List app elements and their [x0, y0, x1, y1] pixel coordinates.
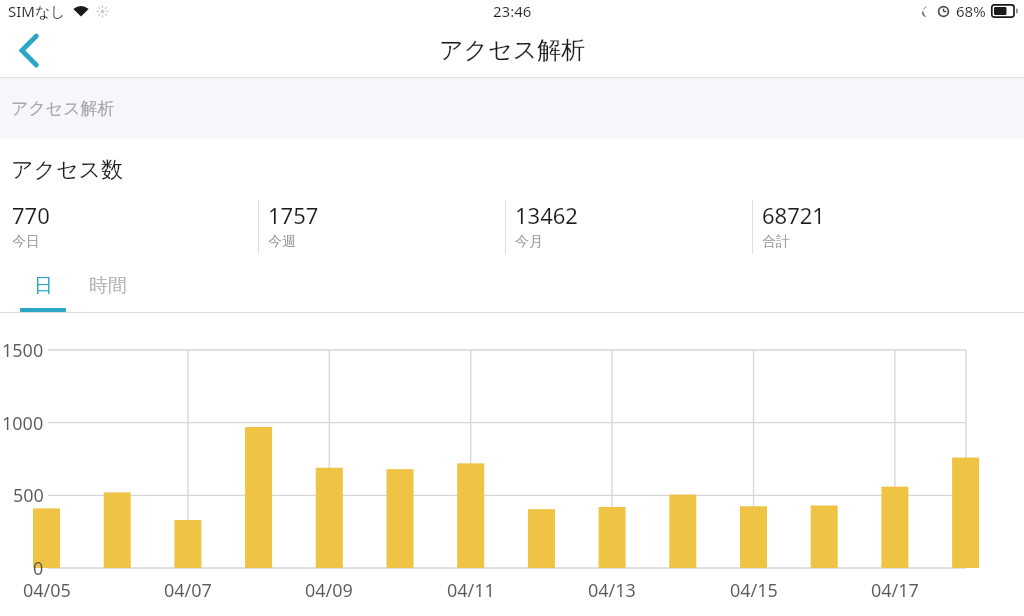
staticText: 時間 — [89, 274, 127, 298]
staticText: 1000 — [2, 411, 44, 436]
staticText: 23:46 — [493, 1, 532, 21]
staticText: 0 — [33, 556, 44, 581]
staticText: SIMなし — [8, 1, 66, 21]
staticText: 13462 — [515, 200, 578, 230]
staticText: アクセス解析 — [439, 35, 586, 65]
staticText: 68% — [956, 1, 986, 21]
button[interactable]: 1757 — [258, 200, 504, 254]
staticText: 1757 — [268, 200, 319, 230]
button[interactable]: 日 — [12, 268, 74, 313]
staticText: 04/05 — [23, 578, 71, 603]
staticText: 04/07 — [164, 578, 212, 603]
staticText: 今日 — [12, 233, 40, 251]
staticText: 今週 — [268, 233, 296, 251]
staticText: 04/13 — [588, 578, 636, 603]
staticText: 1500 — [2, 338, 44, 363]
button[interactable]: 戻る — [0, 22, 58, 78]
staticText: 68721 — [762, 200, 825, 230]
button[interactable]: 時間 — [74, 268, 142, 313]
staticText: アクセス解析 — [11, 98, 115, 119]
staticText: 500 — [13, 483, 44, 508]
staticText: 合計 — [762, 233, 790, 251]
staticText: 04/15 — [730, 578, 778, 603]
staticText: 今月 — [515, 233, 543, 251]
staticText: 770 — [12, 200, 50, 230]
button[interactable]: 68721 — [752, 200, 1002, 254]
staticText: 04/17 — [871, 578, 919, 603]
staticText: アクセス数 — [11, 156, 124, 184]
staticText: 04/11 — [447, 578, 495, 603]
button[interactable]: 770 — [12, 200, 258, 254]
staticText: 日 — [34, 274, 53, 298]
button[interactable]: 13462 — [505, 200, 751, 254]
staticText: 04/09 — [305, 578, 353, 603]
